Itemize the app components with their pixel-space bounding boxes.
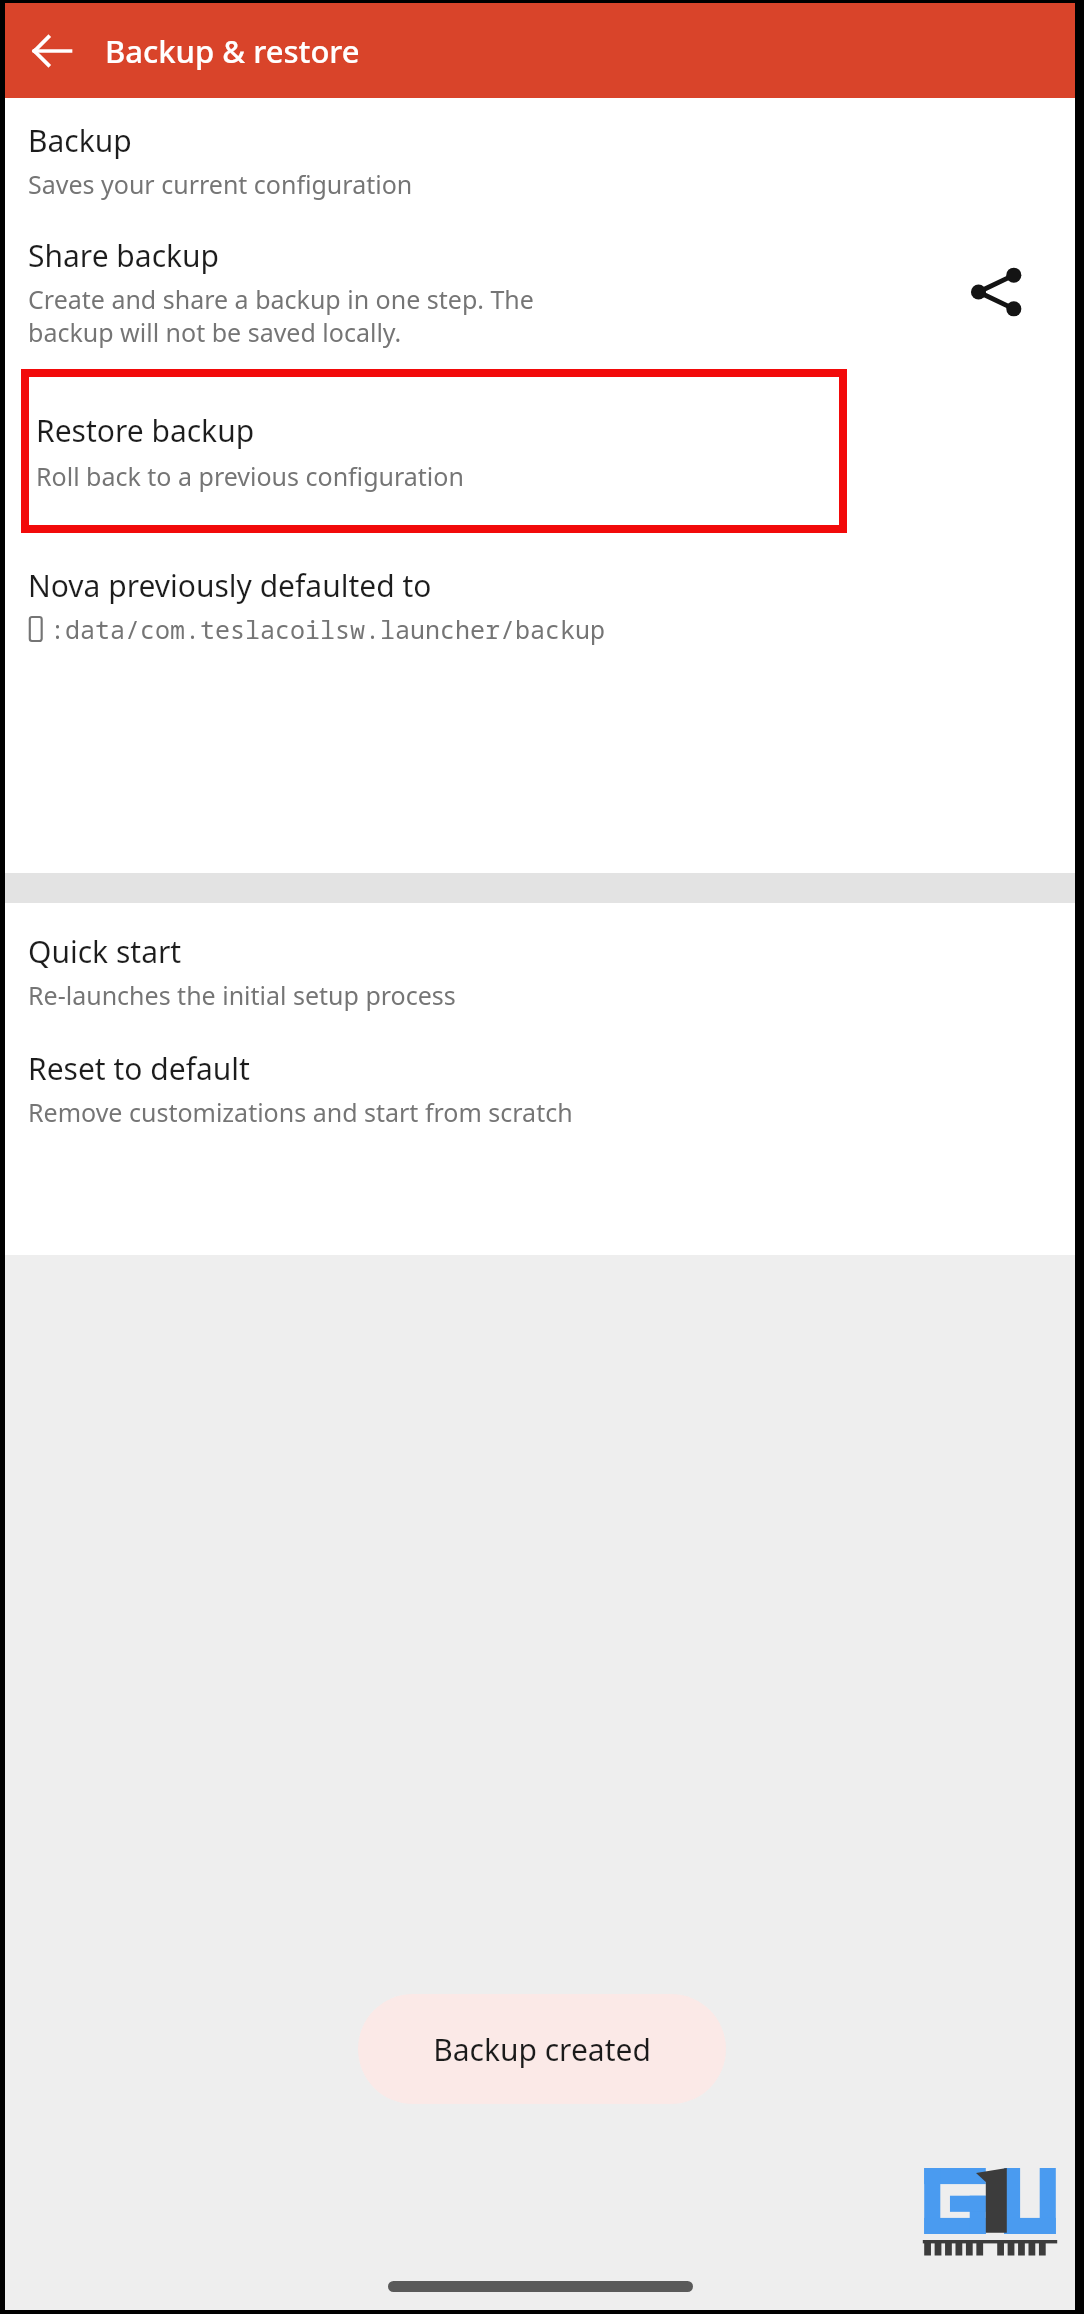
staticText: Re-launches the initial setup process [28,978,456,1012]
staticText: Create and share a backup in one step. T… [28,282,548,349]
staticText: Reset to default [28,1048,250,1089]
staticText: Share backup [28,235,220,276]
button[interactable]: Quick start [5,903,1075,1012]
button[interactable]: Restore backup [29,377,839,525]
button[interactable]: Share [947,242,1047,342]
staticText: Saves your current configuration [28,167,413,201]
staticText: Nova previously defaulted to [28,565,432,606]
button[interactable]: Back [21,20,83,82]
staticText: Quick start [28,931,182,972]
staticText: Remove customizations and start from scr… [28,1095,573,1129]
staticText: Backup & restore [105,30,360,72]
staticText: Roll back to a previous configuration [36,459,464,493]
staticText: Restore backup [36,410,255,451]
button[interactable]: Backup [5,98,1075,201]
staticText: Backup created [433,2029,651,2070]
staticText: :data/com.teslacoilsw.launcher/backup [50,612,606,646]
button[interactable]: Nova previously defaulted to [5,565,1075,646]
staticText: Backup [28,120,132,161]
button[interactable]: Reset to default [5,1048,1075,1129]
button[interactable]: Share backup [5,235,1075,349]
